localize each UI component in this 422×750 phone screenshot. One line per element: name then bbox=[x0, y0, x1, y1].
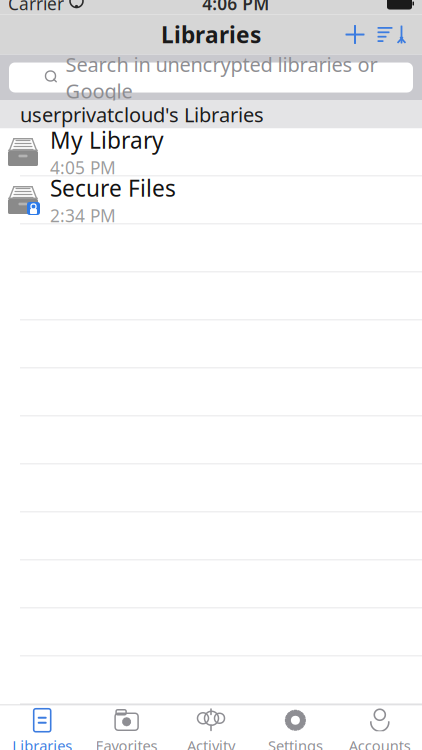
button[interactable]: Settings bbox=[253, 705, 338, 750]
staticText: 2:34 PM bbox=[50, 204, 116, 227]
staticText: My Library bbox=[50, 125, 164, 155]
button[interactable]: My Library bbox=[0, 128, 422, 176]
staticText: Settings bbox=[268, 736, 323, 750]
button[interactable]: Libraries bbox=[0, 705, 84, 750]
button[interactable]: Search in unencrypted libraries or Googl… bbox=[9, 62, 413, 92]
staticText: Libraries bbox=[161, 19, 261, 49]
staticText: 4:06 PM bbox=[202, 0, 269, 15]
button[interactable]: Favorites bbox=[84, 705, 169, 750]
staticText: Search in unencrypted libraries or Googl… bbox=[65, 51, 377, 104]
staticText: Activity bbox=[187, 736, 235, 750]
staticText: Carrier bbox=[8, 0, 64, 15]
staticText: Libraries bbox=[12, 736, 72, 750]
button[interactable]: Sort bbox=[372, 17, 414, 51]
button[interactable]: Accounts bbox=[338, 705, 422, 750]
staticText: Accounts bbox=[349, 736, 411, 750]
staticText: Favorites bbox=[96, 736, 158, 750]
staticText: userprivatcloud's Libraries bbox=[20, 101, 264, 128]
button[interactable]: Activity bbox=[169, 705, 253, 750]
button[interactable]: Secure Files bbox=[0, 176, 422, 224]
staticText: Secure Files bbox=[50, 173, 176, 203]
button[interactable]: Add library bbox=[338, 17, 372, 51]
staticText: 4:05 PM bbox=[50, 156, 116, 179]
